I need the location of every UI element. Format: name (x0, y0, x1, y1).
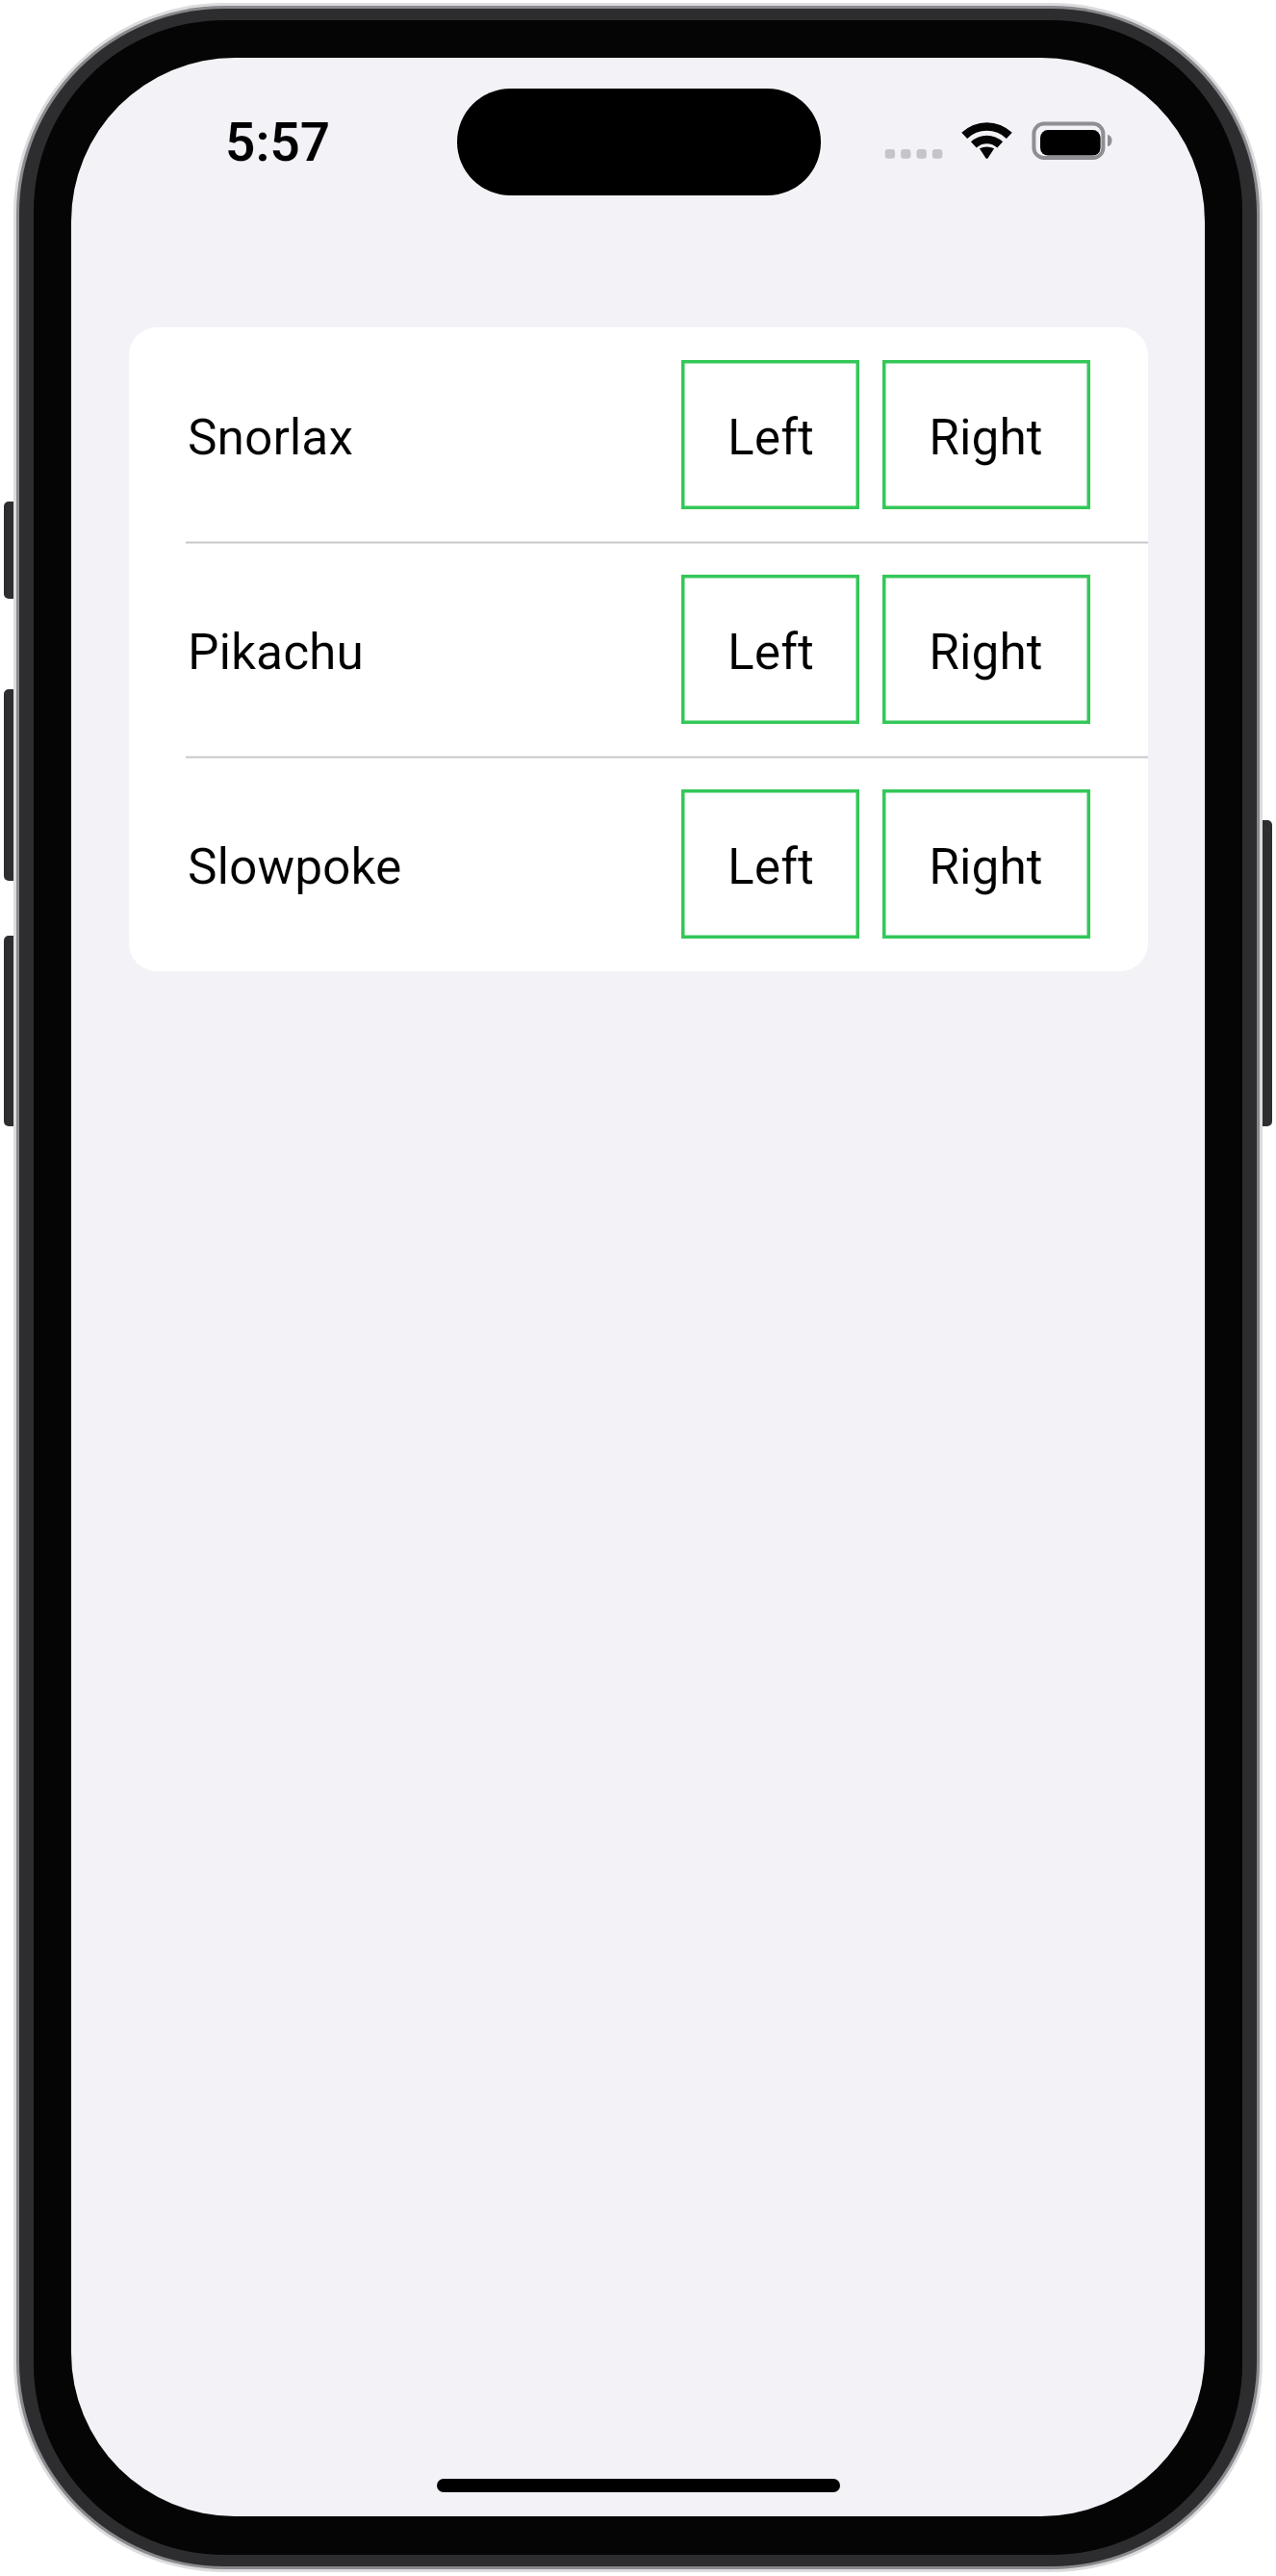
staticText: Slowpoke (188, 837, 402, 895)
button[interactable]: Right (882, 789, 1090, 939)
staticText: Left (727, 408, 814, 466)
button[interactable]: Left (681, 360, 859, 509)
other: Battery (1030, 119, 1118, 164)
staticText: Left (727, 623, 814, 681)
button[interactable]: Right (882, 360, 1090, 509)
staticText: Pikachu (188, 623, 364, 681)
staticText: 5:57 (225, 112, 331, 173)
other: Wi-Fi (961, 118, 1012, 159)
button[interactable]: Right (882, 575, 1090, 724)
staticText: Right (929, 623, 1043, 681)
other: Cellular signal (884, 148, 944, 162)
staticText: Snorlax (188, 408, 353, 466)
staticText: Right (929, 837, 1043, 895)
button[interactable]: Left (681, 789, 859, 939)
button[interactable]: Left (681, 575, 859, 724)
staticText: Left (727, 837, 814, 895)
staticText: Right (929, 408, 1043, 466)
